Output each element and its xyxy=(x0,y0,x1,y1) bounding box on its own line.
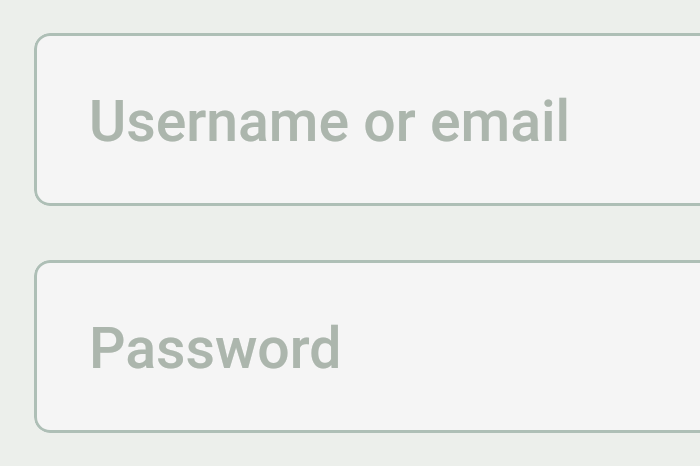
button[interactable]: Password xyxy=(34,260,700,433)
staticText: Username or email xyxy=(89,88,571,155)
staticText: Password xyxy=(89,315,342,382)
button[interactable]: Username or email xyxy=(34,33,700,206)
